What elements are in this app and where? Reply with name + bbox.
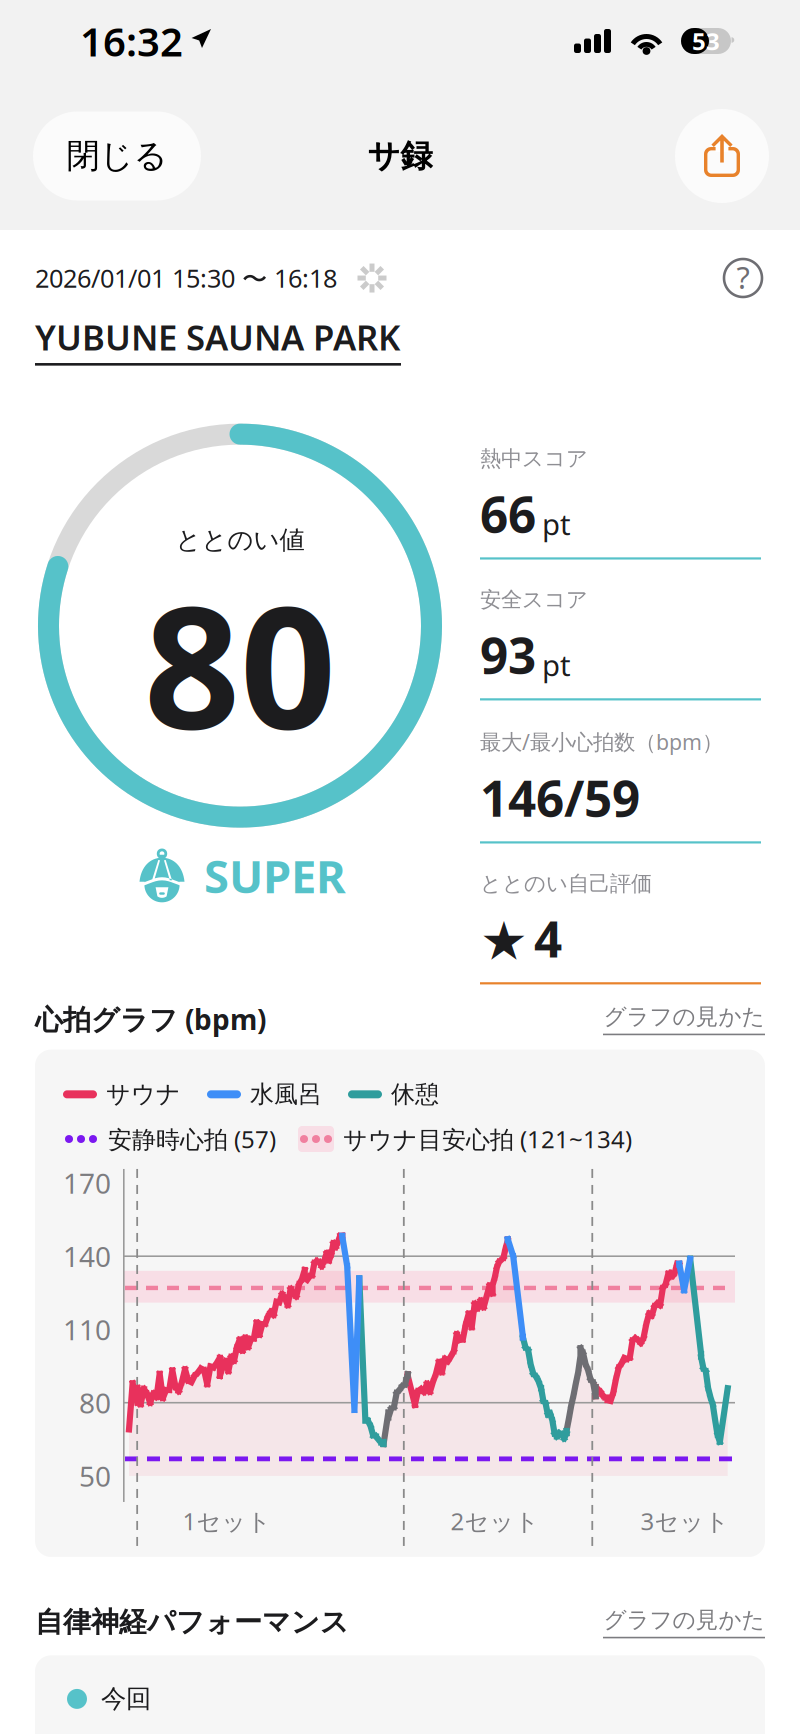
staticText: YUBUNE SAUNA PARK [35,314,400,360]
staticText: 休憩 [391,1080,439,1109]
staticText: ととのい自己評価 [480,870,652,897]
staticText: グラフの見かた [603,1003,764,1031]
staticText: 2026/01/01 15:30 〜 16:18 [35,261,337,295]
button[interactable]: Share [675,109,769,203]
staticText: サウナ [106,1080,181,1109]
button[interactable]: Help [721,256,765,300]
staticText: 66 [480,481,536,546]
staticText: SUPER [204,846,346,906]
staticText: 80 [79,1384,111,1421]
staticText: 93 [480,622,536,687]
button[interactable]: グラフの見かた [603,1003,765,1035]
button[interactable]: 閉じる [33,111,201,200]
staticText: 今回 [101,1683,151,1714]
staticText: 安全スコア [480,587,588,613]
staticText: pt [542,645,571,684]
staticText: 16:32 [80,14,183,67]
staticText: 53 [692,25,720,57]
staticText: 1セット [182,1505,271,1537]
button[interactable]: グラフの見かた [603,1606,765,1638]
staticText: 熱中スコア [480,446,588,472]
staticText: ? [736,257,749,297]
staticText: サウナ目安心拍 (121~134) [343,1123,632,1155]
staticText: 140 [63,1238,111,1275]
staticText: ととのい値 [175,524,304,556]
staticText: 心拍グラフ (bpm) [35,1000,266,1038]
staticText: 80 [144,552,336,775]
staticText: グラフの見かた [603,1606,764,1634]
staticText: 50 [79,1457,111,1495]
staticText: 110 [63,1311,111,1348]
staticText: 閉じる [66,135,167,176]
staticText: 2セット [450,1505,539,1537]
staticText: サ録 [367,136,432,176]
staticText: 水風呂 [250,1080,322,1109]
staticText: 4 [534,906,562,971]
staticText: 146/59 [480,765,640,830]
staticText: 3セット [640,1505,729,1537]
staticText: 安静時心拍 (57) [108,1123,276,1155]
staticText: 170 [63,1164,111,1202]
staticText: 自律神経パフォーマンス [35,1605,349,1639]
staticText: ★ [480,911,528,971]
staticText: pt [542,504,571,543]
button[interactable]: YUBUNE SAUNA PARK [35,314,401,366]
staticText: 最大/最小心拍数（bpm） [480,727,723,756]
